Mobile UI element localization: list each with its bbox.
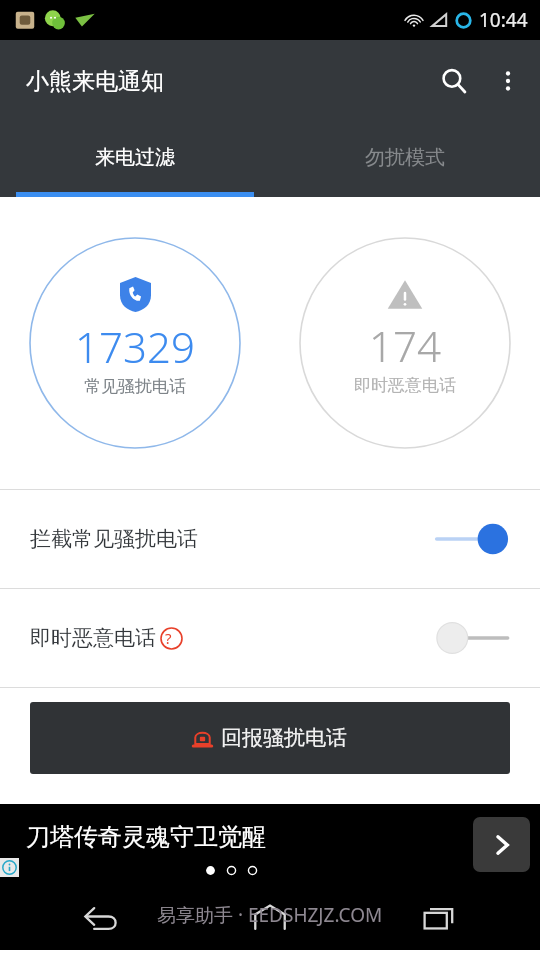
- staticText: 10:44: [479, 7, 528, 33]
- staticText: 17329: [75, 318, 195, 375]
- staticText: 拦截常见骚扰电话: [30, 526, 198, 552]
- button[interactable]: 回报骚扰电话: [30, 702, 510, 774]
- staticText: ?: [165, 628, 172, 648]
- staticText: 回报骚扰电话: [221, 725, 347, 751]
- button[interactable]: Home: [239, 891, 301, 943]
- button[interactable]: 即时恶意电话: [0, 589, 540, 687]
- button[interactable]: Search: [426, 53, 482, 109]
- staticText: 易享助手 · EEDSHZJZ.COM: [157, 902, 383, 928]
- button[interactable]: Toggle off: [432, 618, 510, 658]
- staticText: 即时恶意电话: [354, 375, 456, 396]
- button[interactable]: Next ad: [473, 817, 530, 872]
- button[interactable]: Back: [70, 891, 132, 943]
- button[interactable]: Ad info: [0, 858, 19, 877]
- button[interactable]: 174: [299, 237, 511, 449]
- staticText: 174: [369, 317, 441, 374]
- staticText: 即时恶意电话: [30, 625, 156, 651]
- staticText: 来电过滤: [95, 145, 175, 170]
- staticText: 刀塔传奇灵魂守卫觉醒: [26, 822, 266, 852]
- button[interactable]: 勿扰模式: [270, 122, 540, 192]
- staticText: 小熊来电通知: [26, 67, 164, 96]
- button[interactable]: Toggle on: [432, 519, 510, 559]
- staticText: 常见骚扰电话: [84, 376, 186, 397]
- button[interactable]: 17329: [29, 237, 241, 449]
- staticText: 勿扰模式: [365, 145, 445, 170]
- button[interactable]: Recent apps: [408, 891, 470, 943]
- button[interactable]: More options: [482, 55, 534, 107]
- button[interactable]: 拦截常见骚扰电话: [0, 490, 540, 588]
- button[interactable]: 刀塔传奇灵魂守卫觉醒: [0, 804, 540, 884]
- button[interactable]: 来电过滤: [0, 122, 270, 192]
